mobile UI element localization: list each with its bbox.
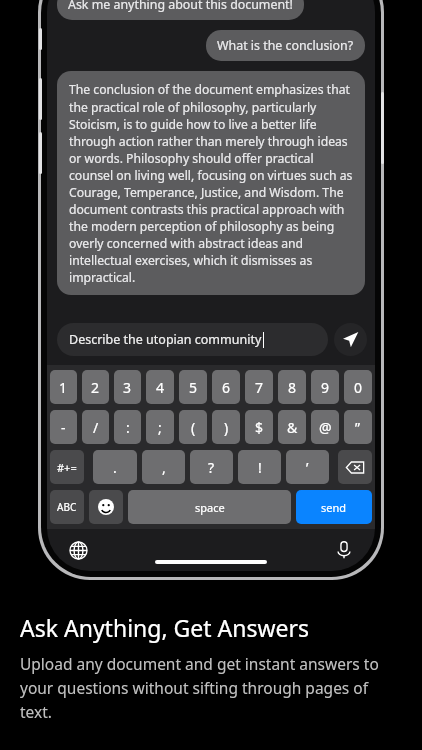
staticText: What is the conclusion? [217, 37, 354, 54]
button[interactable]: 6 [212, 370, 240, 404]
button[interactable]: ( [179, 410, 207, 444]
button[interactable]: The conclusion of the document emphasize… [57, 71, 365, 295]
button[interactable]: ’ [286, 450, 329, 484]
button[interactable]: 8 [278, 370, 306, 404]
staticText: ” [355, 418, 361, 437]
button[interactable]: , [142, 450, 185, 484]
staticText: ) [224, 418, 229, 437]
staticText: send [321, 500, 347, 515]
button[interactable]: & [278, 410, 306, 444]
staticText: @ [319, 418, 332, 437]
button[interactable]: : [114, 410, 141, 444]
button[interactable]: send [296, 490, 372, 524]
button[interactable]: / [82, 410, 109, 444]
staticText: 2 [91, 378, 100, 397]
button[interactable]: 4 [146, 370, 174, 404]
button[interactable]: 1 [50, 370, 77, 404]
button[interactable]: 7 [245, 370, 273, 404]
button[interactable]: 5 [179, 370, 207, 404]
staticText: #+= [57, 460, 77, 475]
button[interactable]: ABC [50, 490, 84, 524]
staticText: space [195, 500, 225, 515]
staticText: - [61, 418, 66, 437]
button[interactable]: ” [344, 410, 372, 444]
button[interactable]: ; [146, 410, 174, 444]
staticText: ( [191, 418, 196, 437]
button[interactable]: Describe the utopian community [57, 323, 328, 356]
staticText: . [113, 458, 117, 477]
button[interactable]: 2 [82, 370, 109, 404]
staticText: $ [255, 418, 264, 437]
staticText: ’ [306, 458, 309, 477]
staticText: / [93, 418, 99, 437]
staticText: Upload any document and get instant answ… [20, 653, 404, 722]
staticText: 7 [255, 378, 264, 397]
button[interactable]: ? [190, 450, 233, 484]
button[interactable]: What is the conclusion? [206, 30, 365, 61]
button[interactable]: Emoji [89, 490, 123, 524]
button[interactable]: 0 [344, 370, 372, 404]
staticText: The conclusion of the document emphasize… [69, 81, 353, 285]
staticText: Describe the utopian community [69, 331, 262, 348]
staticText: 5 [189, 378, 198, 397]
staticText: 9 [321, 378, 330, 397]
staticText: 1 [59, 378, 68, 397]
staticText: ! [258, 458, 262, 477]
staticText: Ask Anything, Get Answers [20, 612, 310, 643]
button[interactable]: @ [311, 410, 339, 444]
button[interactable]: Dictate [331, 537, 357, 563]
staticText: Ask me anything about this document! [68, 0, 293, 13]
button[interactable]: . [93, 450, 137, 484]
button[interactable]: Send [334, 323, 367, 356]
staticText: , [162, 458, 166, 477]
staticText: ; [158, 418, 162, 437]
staticText: 0 [354, 378, 363, 397]
button[interactable]: ! [238, 450, 281, 484]
button[interactable]: Change keyboard language [65, 537, 91, 563]
staticText: & [287, 418, 298, 437]
button[interactable]: ) [212, 410, 240, 444]
staticText: 8 [288, 378, 297, 397]
button[interactable]: - [50, 410, 77, 444]
button[interactable]: #+= [50, 450, 84, 484]
button[interactable]: space [128, 490, 291, 524]
button[interactable]: 9 [311, 370, 339, 404]
button[interactable]: $ [245, 410, 273, 444]
button[interactable]: Backspace [338, 450, 372, 484]
button[interactable]: Ask me anything about this document! [57, 0, 304, 20]
staticText: : [126, 418, 130, 437]
staticText: ? [208, 458, 215, 477]
staticText: 6 [222, 378, 231, 397]
staticText: 3 [123, 378, 132, 397]
staticText: 4 [156, 378, 165, 397]
staticText: ABC [57, 500, 77, 514]
button[interactable]: 3 [114, 370, 141, 404]
